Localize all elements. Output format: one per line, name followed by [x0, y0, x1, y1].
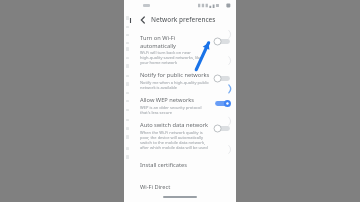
staticText: Wi-Fi will turn back on near high-qualit… [140, 50, 202, 65]
staticText: Turn on Wi-Fi automatically [140, 34, 211, 49]
staticText: When the Wi-Fi network quality is poor, … [140, 130, 208, 150]
button[interactable]: More options [124, 14, 136, 26]
staticText: WEP is an older security protocol that's… [140, 105, 202, 115]
staticText: Auto switch data network [140, 121, 209, 129]
staticText: Wi-Fi Direct [140, 183, 171, 191]
button[interactable]: Allow WEP networks [124, 93, 236, 118]
button[interactable]: Switch off [213, 36, 232, 47]
button[interactable]: Switch off [213, 123, 232, 134]
button[interactable]: Auto switch data network [124, 118, 236, 153]
button[interactable]: Wi-Fi Direct [124, 180, 236, 194]
staticText: Notify me when a high-quality public net… [140, 80, 209, 90]
staticText: Network preferences [151, 15, 216, 24]
button[interactable]: Turn on Wi-Fi automatically [124, 28, 236, 68]
button[interactable]: Back [136, 13, 150, 27]
staticText: Notify for public networks [140, 71, 210, 79]
button[interactable]: Switch on [213, 98, 232, 109]
button[interactable]: Notify for public networks [124, 68, 236, 93]
button[interactable]: Switch off [213, 73, 232, 84]
button[interactable]: Install certificates [124, 158, 236, 172]
staticText: Allow WEP networks [140, 96, 195, 104]
staticText: Install certificates [140, 161, 187, 169]
